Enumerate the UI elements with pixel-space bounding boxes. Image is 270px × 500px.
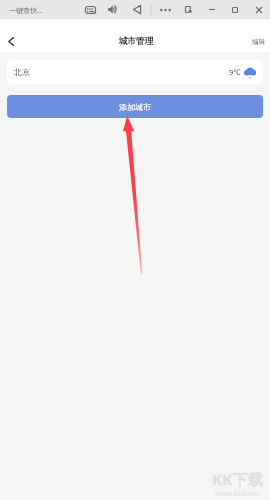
- staticText: 添加城市: [119, 102, 151, 112]
- button[interactable]: Minimize: [205, 0, 219, 19]
- button[interactable]: Maximize: [228, 0, 242, 19]
- button[interactable]: Close: [252, 0, 266, 19]
- staticText: 一键查快...: [9, 6, 43, 16]
- button[interactable]: Volume: [104, 0, 121, 19]
- button[interactable]: 编辑: [246, 30, 270, 52]
- button[interactable]: Keyboard: [81, 0, 100, 19]
- staticText: 北京: [14, 67, 30, 77]
- button[interactable]: Back: [0, 30, 21, 52]
- button[interactable]: 北京: [7, 60, 263, 84]
- button[interactable]: More options: [156, 0, 175, 19]
- staticText: 编辑: [252, 38, 266, 46]
- staticText: KK下载: [212, 469, 264, 489]
- staticText: 城市管理: [118, 36, 154, 47]
- staticText: www.kkx.net: [215, 489, 261, 499]
- button[interactable]: 添加城市: [7, 95, 263, 118]
- button[interactable]: Back: [129, 0, 145, 19]
- button[interactable]: Screenshot: [181, 0, 196, 19]
- staticText: 9℃: [229, 67, 241, 77]
